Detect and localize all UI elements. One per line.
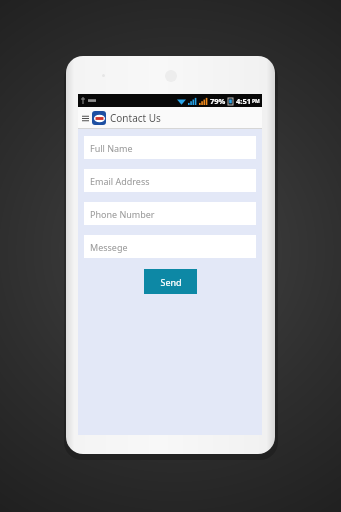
staticText: Send <box>160 276 182 288</box>
button[interactable]: Full Name <box>84 136 256 159</box>
button[interactable]: Phone Number <box>84 202 256 225</box>
staticText: Full Name <box>90 142 133 154</box>
button[interactable]: App logo <box>92 111 106 125</box>
button[interactable]: Open navigation menu <box>80 113 91 124</box>
staticText: PM <box>252 98 260 105</box>
staticText: Phone Number <box>90 208 155 220</box>
staticText: 79% <box>210 96 226 106</box>
staticText: 4:51 <box>236 96 251 106</box>
button[interactable]: Send <box>144 269 197 294</box>
staticText: Contact Us <box>110 111 161 125</box>
button[interactable]: Messege <box>84 235 256 258</box>
staticText: Messege <box>90 241 128 253</box>
button[interactable]: Email Address <box>84 169 256 192</box>
staticText: Email Address <box>90 175 150 187</box>
